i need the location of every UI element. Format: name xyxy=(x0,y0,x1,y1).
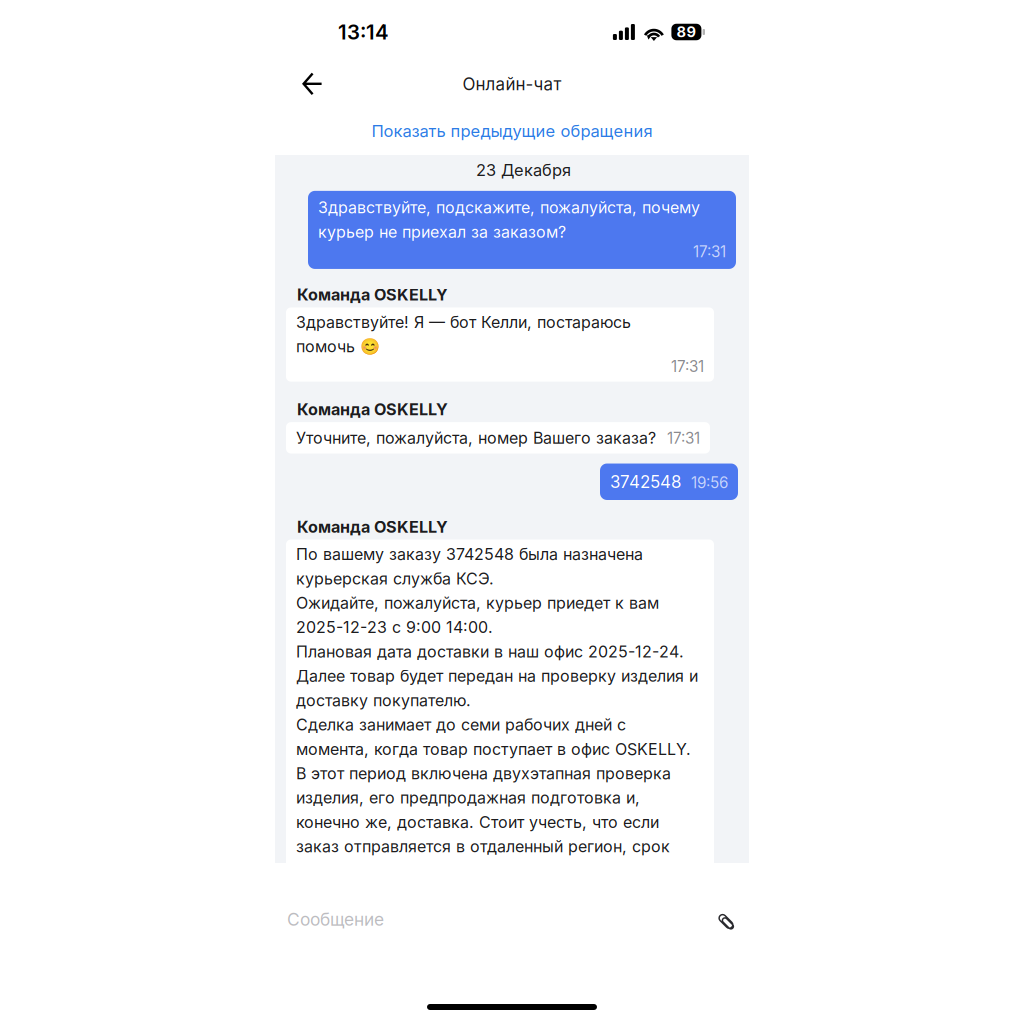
staticText: Команда OSKELLY xyxy=(297,285,448,304)
staticText: Онлайн-чат xyxy=(462,74,561,94)
button[interactable]: Показать предыдущие обращения xyxy=(275,107,749,155)
staticText: По вашему заказу 3742548 была назначена … xyxy=(296,544,698,880)
staticText: Показать предыдущие обращения xyxy=(371,121,652,141)
staticText: Здравствуйте, подскажите, пожалуйста, по… xyxy=(318,198,700,241)
staticText: 17:31 xyxy=(667,429,700,447)
staticText: 19:56 xyxy=(691,474,728,492)
staticText: Здравствуйте! Я — бот Келли, постараюсь … xyxy=(296,312,631,356)
staticText: Сообщение xyxy=(287,909,384,930)
staticText: 17:31 xyxy=(671,357,704,376)
staticText: 89 xyxy=(676,23,696,41)
staticText: Команда OSKELLY xyxy=(297,517,448,536)
staticText: 23 Декабря xyxy=(476,160,571,180)
staticText: 17:31 xyxy=(693,243,726,261)
staticText: 13:14 xyxy=(338,20,389,44)
staticText: Команда OSKELLY xyxy=(297,400,448,419)
staticText: 3742548 xyxy=(610,471,681,492)
staticText: Уточните, пожалуйста, номер Вашего заказ… xyxy=(296,428,656,448)
button[interactable]: Attach file xyxy=(706,904,736,934)
button[interactable]: Back xyxy=(290,62,334,106)
